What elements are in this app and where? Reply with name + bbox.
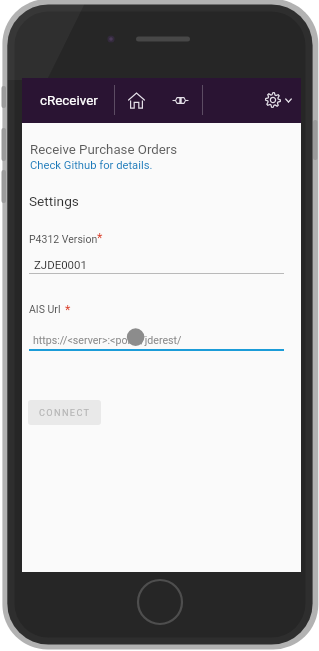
staticText: Receive Purchase Orders	[30, 142, 178, 158]
button[interactable]: Home	[120, 84, 152, 116]
staticText: Check Github for details.	[30, 159, 153, 172]
staticText: https://<server>:<port>/jderest/	[33, 334, 182, 346]
button[interactable]: CONNECT	[28, 400, 101, 425]
staticText: Settings	[29, 193, 79, 209]
staticText: CONNECT	[39, 407, 91, 418]
button[interactable]: Device	[164, 84, 196, 116]
staticText: *	[97, 230, 103, 245]
button[interactable]: Check Github for details.	[30, 159, 153, 172]
staticText: P4312 Version	[29, 233, 98, 245]
staticText: cReceiver	[40, 93, 98, 109]
button[interactable]: Settings	[260, 84, 297, 116]
staticText: ZJDE0001	[34, 258, 87, 271]
staticText: *	[65, 302, 71, 317]
staticText: AIS Url	[29, 303, 61, 315]
